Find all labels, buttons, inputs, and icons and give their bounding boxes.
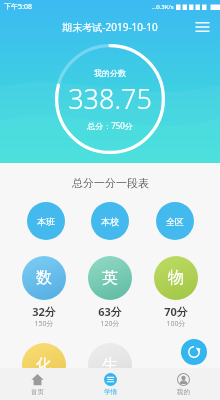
staticText: 下午5:08 — [4, 2, 32, 12]
staticText: 数 — [36, 268, 52, 288]
button[interactable]: 数 — [22, 256, 66, 329]
staticText: 100分 — [166, 319, 186, 329]
staticText: 63分 — [98, 304, 122, 319]
button[interactable]: 化 — [22, 343, 66, 387]
button[interactable]: 本校 — [91, 202, 129, 240]
staticText: 化 — [36, 355, 52, 375]
button[interactable]: 学情 — [74, 368, 147, 400]
staticText: 我的 — [177, 388, 190, 396]
staticText: 我的分数 — [94, 68, 126, 78]
staticText: 338.75 — [68, 80, 152, 117]
staticText: 32分 — [32, 304, 56, 319]
staticText: 120分 — [100, 319, 120, 329]
staticText: 英 — [102, 268, 118, 288]
button[interactable]: 物 — [154, 256, 198, 329]
staticText: 70分 — [164, 304, 188, 319]
button[interactable]: 首页 — [0, 368, 74, 400]
staticText: 总分一分一段表 — [72, 176, 149, 190]
staticText: 本班 — [37, 216, 55, 227]
button[interactable]: Refresh — [181, 339, 207, 365]
staticText: ...0.3K/s — [151, 3, 174, 11]
staticText: 生 — [102, 355, 118, 375]
staticText: 150分 — [34, 319, 54, 329]
staticText: 学情 — [104, 388, 117, 396]
button[interactable]: 全区 — [156, 202, 194, 240]
staticText: 本校 — [101, 216, 119, 227]
button[interactable]: 我的 — [147, 368, 220, 400]
staticText: 全区 — [166, 216, 184, 227]
button[interactable]: 生 — [88, 343, 132, 387]
button[interactable]: 英 — [88, 256, 132, 329]
button[interactable]: Menu — [192, 17, 212, 37]
staticText: 物 — [168, 268, 184, 288]
staticText: 总分：750分 — [87, 120, 133, 131]
staticText: 首页 — [31, 388, 44, 396]
button[interactable]: 本班 — [27, 202, 65, 240]
staticText: 期末考试-2019-10-10 — [62, 20, 158, 34]
